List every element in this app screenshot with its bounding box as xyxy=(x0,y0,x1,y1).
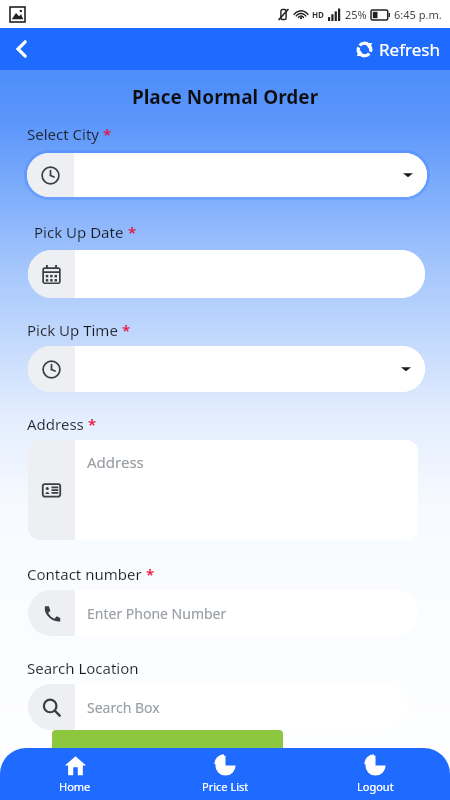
staticText: Refresh xyxy=(379,38,440,61)
button[interactable]: Logout xyxy=(300,748,450,800)
staticText: Price List xyxy=(202,779,249,794)
staticText: * xyxy=(88,414,97,434)
staticText: Pick Up Date xyxy=(34,222,124,242)
staticText: Place Normal Order xyxy=(0,84,450,110)
button[interactable]: Back xyxy=(2,29,42,69)
button[interactable]: Contact number xyxy=(28,590,418,636)
staticText: Logout xyxy=(357,779,394,794)
other: Pick up date xyxy=(28,250,75,298)
staticText: Contact number xyxy=(27,564,142,584)
button[interactable]: Price List xyxy=(150,748,300,800)
staticText: 6:45 p.m. xyxy=(394,7,442,22)
staticText: Select City xyxy=(27,124,99,144)
staticText: Search Box xyxy=(87,698,160,717)
staticText: Enter Phone Number xyxy=(87,604,227,623)
staticText: * xyxy=(128,222,137,242)
button[interactable]: Pick up time xyxy=(28,346,425,392)
other: Address xyxy=(28,440,75,540)
staticText: Address xyxy=(27,414,84,434)
button[interactable]: Home xyxy=(0,748,150,800)
button[interactable]: Pick up date xyxy=(28,250,425,298)
staticText: * xyxy=(146,564,155,584)
button[interactable]: Refresh xyxy=(355,38,440,61)
staticText: Address xyxy=(87,452,144,472)
button[interactable] xyxy=(52,730,283,752)
staticText: 25% xyxy=(345,7,367,22)
other: Search location xyxy=(28,684,75,730)
staticText: * xyxy=(122,320,131,340)
staticText: HD xyxy=(312,9,324,20)
staticText: * xyxy=(103,124,112,144)
other: Contact number xyxy=(28,590,75,636)
button[interactable]: Address xyxy=(28,440,418,540)
button[interactable]: Select city xyxy=(27,153,427,197)
staticText: Home xyxy=(59,779,91,794)
other: Select city xyxy=(27,153,74,197)
button[interactable]: Search location xyxy=(28,684,408,730)
staticText: Search Location xyxy=(27,658,139,678)
other: Pick up time xyxy=(28,346,75,392)
staticText: Pick Up Time xyxy=(27,320,118,340)
